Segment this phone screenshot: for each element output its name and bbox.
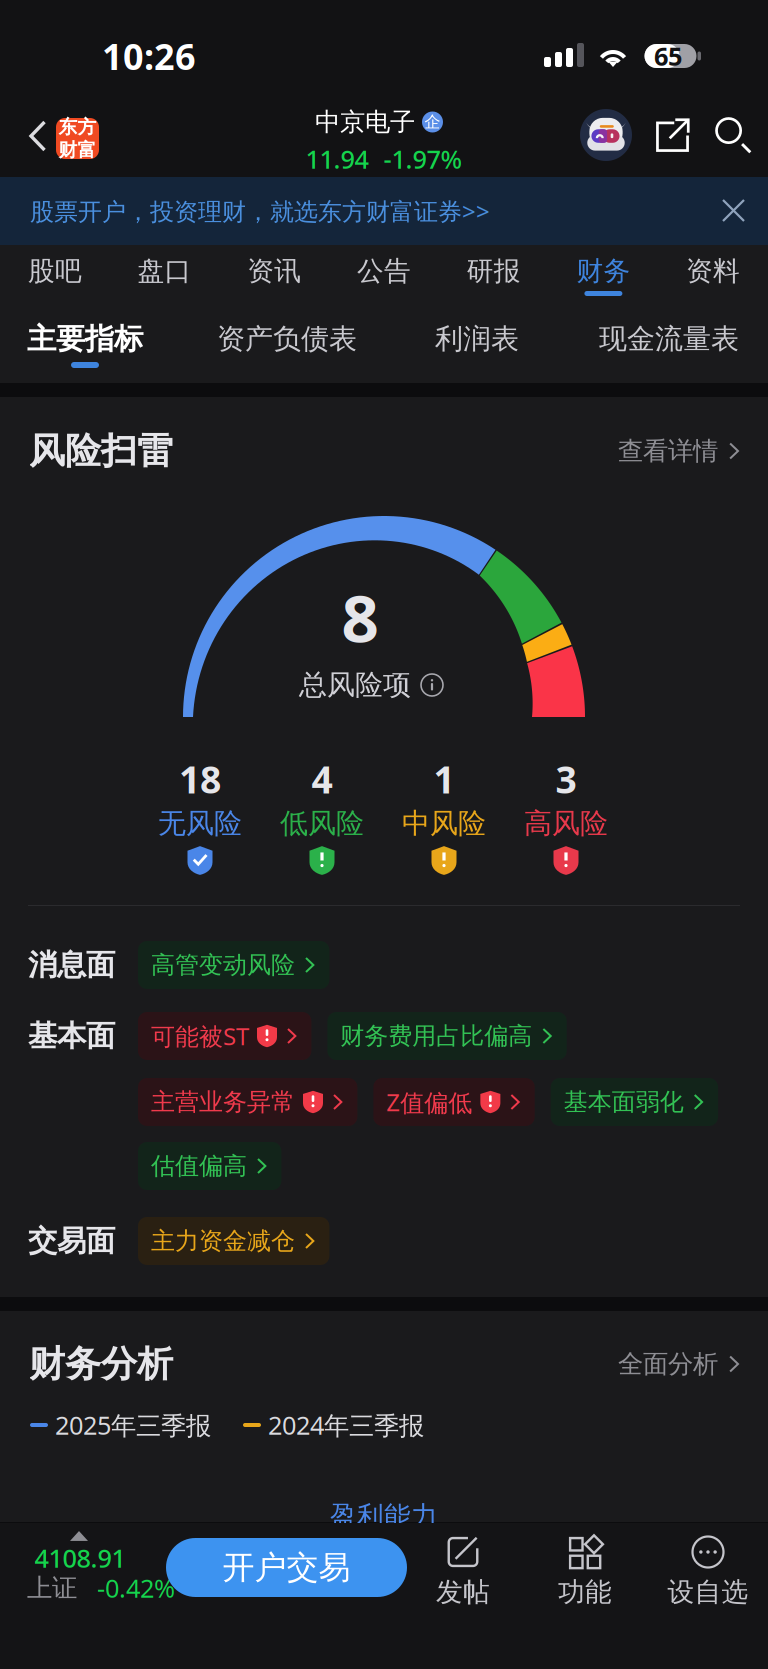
- staticText: 上证: [27, 1572, 77, 1603]
- staticText: 财富: [58, 138, 96, 161]
- button[interactable]: 财务费用占比偏高: [327, 1012, 567, 1060]
- button[interactable]: 盘口: [110, 245, 219, 307]
- button[interactable]: Search: [716, 118, 751, 153]
- staticText: 全面分析: [618, 1348, 718, 1379]
- button[interactable]: Z值偏低: [373, 1078, 535, 1126]
- staticText: 主要指标: [27, 321, 143, 357]
- staticText: 总风险项: [299, 668, 411, 702]
- button[interactable]: 现金流量表: [598, 307, 740, 383]
- button[interactable]: 发帖: [404, 1536, 522, 1636]
- staticText: 低风险: [280, 806, 364, 841]
- staticText: 65: [654, 39, 682, 73]
- button[interactable]: 基本面弱化: [551, 1078, 718, 1126]
- staticText: 高管变动风险: [151, 950, 295, 980]
- staticText: 盈利能力: [330, 1500, 438, 1532]
- staticText: 基本面弱化: [564, 1087, 684, 1117]
- button[interactable]: 设自选: [649, 1536, 767, 1636]
- button[interactable]: 估值偏高: [138, 1142, 281, 1190]
- button[interactable]: 全面分析: [618, 1341, 740, 1387]
- button[interactable]: 资料: [658, 245, 768, 307]
- button[interactable]: Share: [655, 118, 690, 153]
- staticText: 设自选: [667, 1576, 748, 1608]
- button[interactable]: 可能被ST: [138, 1012, 311, 1060]
- staticText: 11.94: [305, 142, 368, 176]
- button[interactable]: 利润表: [434, 307, 520, 383]
- staticText: 中风险: [402, 806, 486, 841]
- button[interactable]: 高管变动风险: [138, 941, 329, 989]
- staticText: -0.42%: [97, 1571, 175, 1605]
- staticText: 股吧: [28, 255, 82, 287]
- button[interactable]: 主要指标: [28, 307, 142, 383]
- button[interactable]: 功能: [526, 1536, 644, 1636]
- button[interactable]: 研报: [439, 245, 548, 307]
- staticText: 主营业务异常: [151, 1087, 295, 1117]
- staticText: 可能被ST: [151, 1020, 249, 1052]
- staticText: 交易面: [28, 1223, 115, 1259]
- staticText: 财务费用占比偏高: [340, 1021, 532, 1051]
- staticText: 盘口: [138, 255, 192, 287]
- staticText: 基本面: [28, 1018, 115, 1054]
- button[interactable]: AI assistant: [580, 109, 632, 161]
- staticText: 18: [179, 754, 221, 804]
- staticText: -1.97%: [383, 142, 462, 176]
- staticText: 中京电子: [315, 106, 415, 137]
- staticText: 企: [424, 112, 440, 132]
- staticText: 8: [341, 574, 378, 660]
- staticText: 股票开户，投资理财，就选东方财富证券>>: [30, 195, 490, 227]
- staticText: 现金流量表: [599, 322, 739, 356]
- staticText: 公告: [357, 255, 411, 287]
- staticText: 4108.91: [34, 1541, 125, 1575]
- staticText: 财务: [576, 255, 630, 287]
- staticText: 2024年三季报: [268, 1408, 424, 1442]
- staticText: 无风险: [158, 806, 242, 841]
- staticText: 功能: [558, 1576, 612, 1608]
- staticText: 资讯: [247, 255, 301, 287]
- button[interactable]: East Money: [56, 118, 99, 159]
- staticText: 财务分析: [29, 1342, 173, 1386]
- button[interactable]: 资讯: [219, 245, 329, 307]
- staticText: 消息面: [28, 947, 115, 983]
- button[interactable]: 股票开户，投资理财，就选东方财富证券>>: [0, 177, 768, 245]
- button[interactable]: 资产负债表: [216, 307, 358, 383]
- staticText: 风险扫雷: [29, 429, 173, 473]
- staticText: 发帖: [436, 1576, 490, 1608]
- staticText: 查看详情: [618, 435, 718, 466]
- button[interactable]: 查看详情: [618, 422, 740, 480]
- button[interactable]: Back: [25, 119, 51, 153]
- button[interactable]: 主力资金减仓: [138, 1217, 329, 1265]
- staticText: 资产负债表: [217, 322, 357, 356]
- staticText: 主力资金减仓: [151, 1226, 295, 1256]
- button[interactable]: 财务: [548, 245, 658, 307]
- staticText: 1: [433, 754, 454, 804]
- staticText: 东方: [58, 116, 96, 138]
- staticText: Z值偏低: [386, 1086, 472, 1118]
- staticText: 利润表: [435, 322, 519, 356]
- staticText: 开户交易: [222, 1548, 350, 1587]
- staticText: 10:26: [102, 32, 196, 80]
- button[interactable]: 主营业务异常: [138, 1078, 357, 1126]
- staticText: 估值偏高: [151, 1151, 247, 1181]
- button[interactable]: 公告: [329, 245, 439, 307]
- staticText: 3: [555, 754, 576, 804]
- staticText: 研报: [467, 255, 521, 287]
- staticText: 资料: [686, 255, 740, 287]
- staticText: 高风险: [524, 806, 608, 841]
- button[interactable]: 开户交易: [166, 1538, 407, 1597]
- button[interactable]: 股吧: [0, 245, 110, 307]
- staticText: 2025年三季报: [55, 1408, 211, 1442]
- staticText: 4: [311, 754, 332, 804]
